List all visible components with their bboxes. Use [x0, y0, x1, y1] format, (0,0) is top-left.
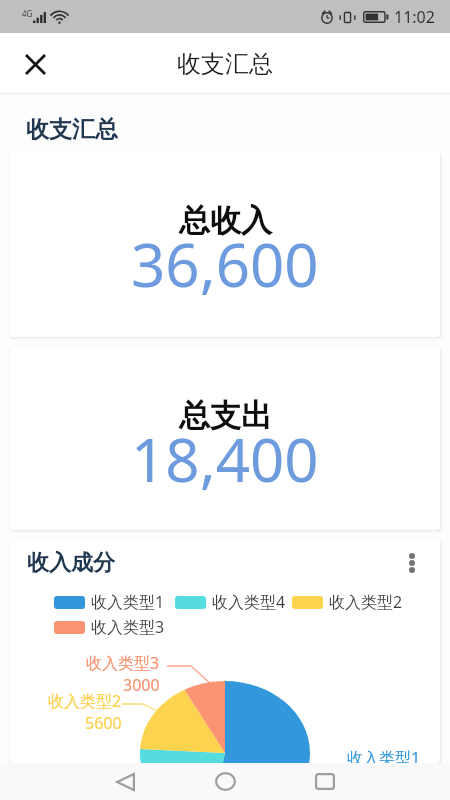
staticText: 收支汇总	[177, 49, 273, 79]
staticText: 收入类型1	[91, 591, 165, 613]
staticText: 收入类型2	[48, 690, 122, 712]
button[interactable]: More options	[397, 548, 427, 578]
staticText: 收支汇总	[26, 115, 118, 144]
staticText: 5600	[85, 712, 122, 734]
button[interactable]: 总支出	[10, 347, 440, 530]
staticText: 4G	[22, 8, 33, 19]
staticText: 18,400	[131, 418, 319, 500]
staticText: 收入成分	[27, 549, 115, 577]
staticText: 收入类型3	[91, 616, 165, 638]
button[interactable]: Close	[13, 42, 57, 86]
button[interactable]: Home	[201, 763, 249, 800]
staticText: 收入类型1	[347, 747, 421, 763]
staticText: 收入类型3	[86, 652, 160, 674]
button[interactable]: Back	[101, 763, 149, 800]
staticText: 收入类型2	[329, 591, 403, 613]
staticText: 36,600	[131, 223, 319, 305]
staticText: 11:02	[394, 6, 435, 28]
button[interactable]: 总收入	[10, 152, 440, 337]
staticText: 收入类型4	[212, 591, 286, 613]
staticText: 总收入	[179, 201, 272, 240]
staticText: 总支出	[179, 396, 272, 435]
staticText: 3000	[123, 674, 160, 696]
button[interactable]: Recents	[301, 763, 349, 800]
